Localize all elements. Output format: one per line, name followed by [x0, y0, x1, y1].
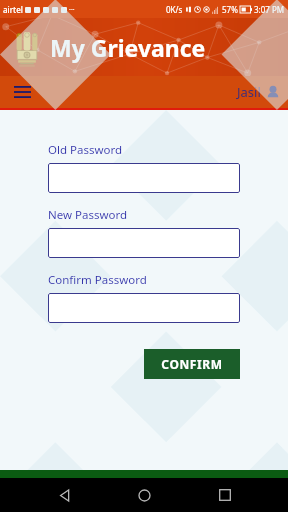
staticText: 3:07 PM — [254, 4, 285, 15]
staticText: New Password — [48, 207, 128, 223]
button[interactable]: Open navigation menu — [8, 78, 36, 106]
staticText: CONFIRM — [161, 356, 223, 372]
button[interactable]: Back — [47, 478, 81, 512]
button[interactable] — [48, 293, 240, 323]
button[interactable]: Home — [127, 478, 161, 512]
button[interactable]: Recent apps — [208, 478, 242, 512]
staticText: ··· — [69, 5, 75, 15]
staticText: 0K/s — [166, 4, 183, 15]
staticText: Confirm Password — [48, 272, 147, 288]
staticText: Jasil — [237, 83, 261, 101]
button[interactable]: Jasil — [237, 83, 280, 101]
button[interactable]: CONFIRM — [144, 349, 240, 379]
button[interactable] — [48, 228, 240, 258]
staticText: airtel — [3, 4, 23, 15]
button[interactable] — [48, 163, 240, 193]
staticText: 57% — [222, 4, 238, 15]
staticText: My Grievance — [50, 32, 206, 63]
staticText: Old Password — [48, 142, 123, 158]
